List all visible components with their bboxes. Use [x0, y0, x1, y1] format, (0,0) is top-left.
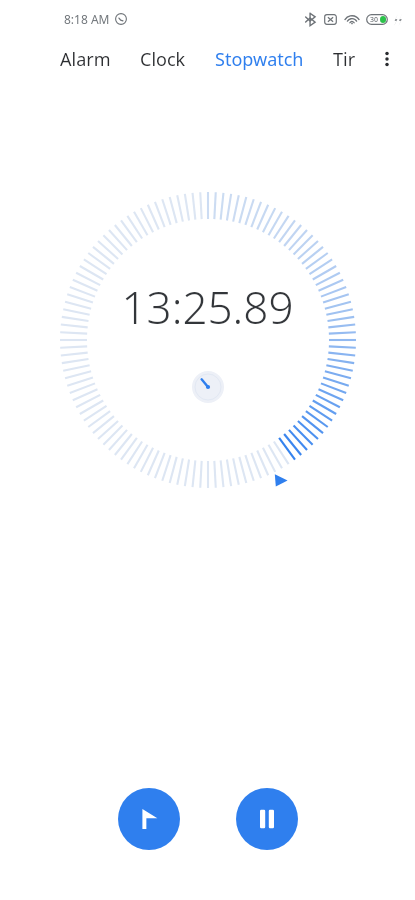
button[interactable]: Stopwatch: [213, 41, 306, 78]
staticText: Alarm: [60, 47, 111, 72]
staticText: 30: [370, 15, 379, 25]
staticText: 13:25.89: [121, 277, 294, 337]
button[interactable]: Clock: [138, 41, 188, 78]
staticText: Tir: [333, 47, 356, 72]
button[interactable]: Tir: [331, 41, 358, 78]
button[interactable]: Alarm: [58, 41, 113, 78]
button[interactable]: Pause: [236, 788, 298, 850]
staticText: 8:18 AM: [64, 11, 110, 27]
button[interactable]: More options: [367, 39, 407, 79]
button[interactable]: Lap: [118, 788, 180, 850]
staticText: Clock: [140, 47, 186, 72]
staticText: Stopwatch: [215, 47, 304, 72]
